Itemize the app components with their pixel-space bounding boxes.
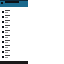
button[interactable] <box>0 44 28 49</box>
button[interactable] <box>0 39 28 44</box>
button[interactable] <box>0 29 28 34</box>
button[interactable] <box>0 24 28 29</box>
button[interactable] <box>0 14 28 19</box>
button[interactable] <box>0 49 28 54</box>
button[interactable] <box>0 54 28 59</box>
button[interactable] <box>0 34 28 39</box>
button[interactable] <box>0 9 28 14</box>
button[interactable] <box>0 19 28 24</box>
